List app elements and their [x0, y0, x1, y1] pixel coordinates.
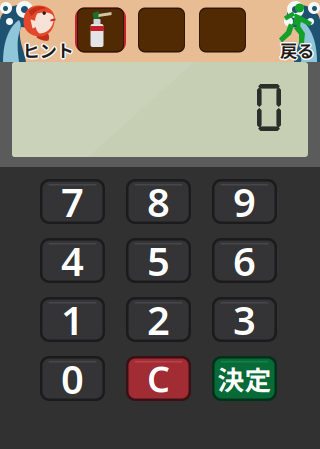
button[interactable]: 2 [126, 297, 191, 342]
staticText: 3 [233, 293, 256, 346]
button[interactable]: ヒント [0, 0, 74, 62]
staticText: ヒント [23, 38, 74, 64]
button[interactable]: Item slot [136, 7, 187, 53]
staticText: 0 [61, 352, 84, 405]
button[interactable]: 3 [212, 297, 277, 342]
staticText: 戻る [281, 37, 315, 63]
button[interactable]: 0 [40, 356, 105, 401]
staticText: 戻る [280, 36, 314, 61]
button[interactable]: 5 [126, 238, 191, 283]
button[interactable]: 決定 [212, 356, 277, 401]
button[interactable]: Item slot [75, 7, 126, 53]
staticText: 戻る [281, 36, 315, 62]
staticText: 戻る [279, 38, 313, 64]
staticText: ヒント [22, 37, 73, 63]
staticText: 決定 [217, 359, 271, 398]
staticText: ヒント [21, 36, 72, 62]
button[interactable]: 戻る [262, 0, 320, 62]
staticText: 8 [147, 175, 170, 228]
staticText: 6 [233, 234, 256, 287]
staticText: 2 [147, 293, 170, 346]
button[interactable]: 6 [212, 238, 277, 283]
staticText: ヒント [24, 37, 75, 63]
staticText: 戻る [279, 36, 313, 62]
staticText: 9 [233, 175, 256, 228]
button[interactable]: Item slot [197, 7, 248, 53]
staticText: 7 [61, 175, 84, 228]
staticText: C [147, 355, 170, 402]
staticText: 戻る [281, 38, 315, 64]
staticText: 1 [61, 293, 84, 346]
staticText: ヒント [21, 38, 72, 64]
staticText: ヒント [23, 36, 74, 62]
staticText: 5 [147, 234, 170, 287]
staticText: 戻る [280, 37, 314, 63]
button[interactable]: 4 [40, 238, 105, 283]
staticText: 戻る [280, 39, 314, 64]
button[interactable]: 7 [40, 179, 105, 224]
staticText: ヒント [21, 37, 72, 63]
staticText: ヒント [22, 36, 73, 61]
button[interactable]: 1 [40, 297, 105, 342]
staticText: 4 [61, 234, 84, 287]
staticText: 戻る [279, 37, 313, 63]
button[interactable]: C [126, 356, 191, 401]
staticText: ヒント [22, 39, 73, 64]
button[interactable]: 8 [126, 179, 191, 224]
button[interactable]: 9 [212, 179, 277, 224]
